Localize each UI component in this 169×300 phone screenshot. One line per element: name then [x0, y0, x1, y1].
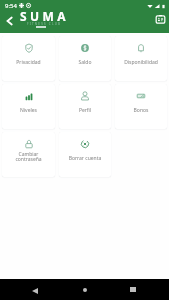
staticText: Cambiar contraseña: [2, 151, 55, 163]
staticText: Niveles: [2, 107, 55, 114]
button[interactable]: Disponibilidad: [115, 36, 167, 81]
staticText: 9:54: [5, 2, 17, 10]
staticText: Borrar cuenta: [59, 155, 111, 162]
staticText: Disponibilidad: [115, 59, 167, 66]
button[interactable]: Home: [75, 280, 94, 299]
button[interactable]: Recents: [123, 280, 142, 299]
button[interactable]: Back: [25, 281, 44, 300]
button[interactable]: Saldo: [59, 36, 111, 81]
staticText: Privacidad: [2, 59, 55, 66]
button[interactable]: Borrar cuenta: [59, 132, 111, 177]
button[interactable]: Niveles: [2, 84, 55, 129]
button[interactable]: Bonos: [115, 84, 167, 129]
staticText: Bonos: [115, 107, 167, 114]
staticText: SUMA: [20, 8, 69, 24]
button[interactable]: Cambiar contraseña: [2, 132, 55, 177]
button[interactable]: Membership card: [154, 13, 167, 26]
button[interactable]: Perfil: [59, 84, 111, 129]
button[interactable]: Back: [2, 14, 16, 28]
staticText: Perfil: [59, 107, 111, 114]
staticText: Saldo: [59, 59, 111, 66]
staticText: F I T N E S S C L U B: [27, 22, 61, 26]
button[interactable]: Privacidad: [2, 36, 55, 81]
